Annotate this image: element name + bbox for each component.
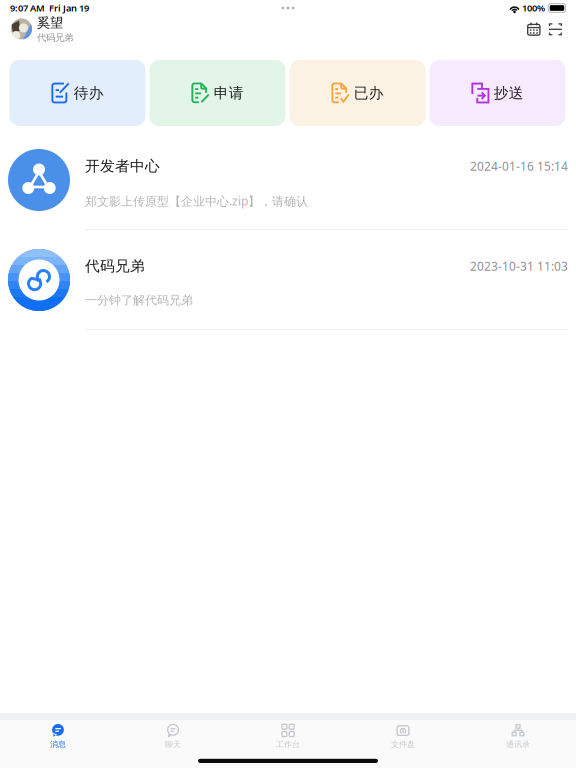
- button[interactable]: 奚望: [0, 16, 73, 43]
- staticText: 文件盘: [391, 739, 415, 749]
- button[interactable]: 消息: [0, 720, 115, 768]
- button[interactable]: Scan: [545, 17, 566, 41]
- button[interactable]: Calendar: [523, 17, 545, 41]
- staticText: 2023-10-31 11:03: [470, 258, 568, 274]
- staticText: 申请: [214, 84, 244, 102]
- staticText: 通讯录: [506, 739, 530, 749]
- button[interactable]: 抄送: [429, 60, 565, 126]
- button[interactable]: 已办: [289, 60, 425, 126]
- staticText: 2024-01-16 15:14: [470, 158, 568, 174]
- staticText: 一分钟了解代码兄弟: [85, 293, 193, 308]
- button[interactable]: 开发者中心: [0, 130, 576, 230]
- button[interactable]: 申请: [149, 60, 285, 126]
- staticText: 奚望: [37, 14, 63, 31]
- staticText: 代码兄弟: [85, 257, 145, 275]
- staticText: 9:07 AM: [10, 2, 45, 14]
- staticText: 抄送: [494, 84, 524, 102]
- button[interactable]: 聊天: [115, 720, 230, 768]
- staticText: 100%: [520, 2, 547, 14]
- button[interactable]: 工作台: [230, 720, 345, 768]
- staticText: Fri Jan 19: [45, 2, 89, 14]
- staticText: 聊天: [165, 739, 181, 749]
- button[interactable]: 代码兄弟: [0, 230, 576, 330]
- staticText: 郑文影上传原型【企业中心.zip】，请确认: [85, 193, 308, 209]
- staticText: 消息: [50, 739, 66, 749]
- staticText: 开发者中心: [85, 157, 160, 175]
- button[interactable]: 通讯录: [460, 720, 575, 768]
- button[interactable]: 待办: [9, 60, 145, 126]
- staticText: 已办: [354, 84, 384, 102]
- staticText: 待办: [74, 84, 104, 102]
- staticText: 工作台: [276, 739, 300, 749]
- button[interactable]: 文件盘: [345, 720, 460, 768]
- staticText: 代码兄弟: [37, 32, 73, 43]
